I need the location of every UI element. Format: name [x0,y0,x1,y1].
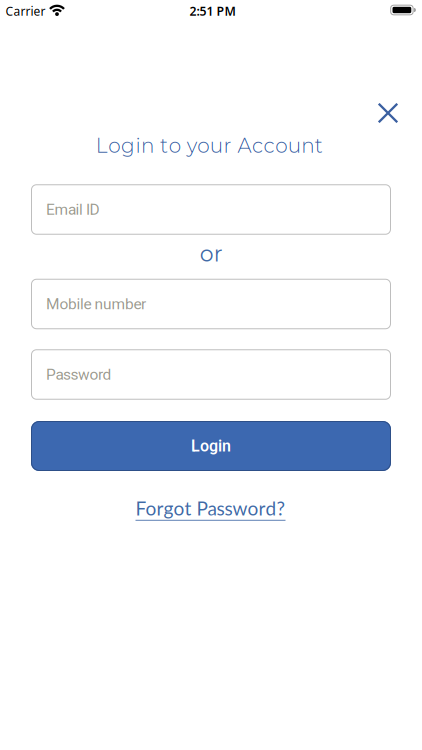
staticText: 2:51 PM [189,3,235,19]
staticText: or [200,240,223,267]
textField[interactable]: Email ID [46,200,391,218]
button[interactable]: Forgot Password? [135,497,285,519]
staticText: Login [191,437,231,455]
button[interactable]: Login [31,421,391,471]
staticText: Carrier [5,3,45,19]
secureTextField[interactable]: Password [46,365,391,383]
staticText: Email ID [46,200,99,218]
textField[interactable]: Mobile number [46,295,391,313]
staticText: Password [46,365,111,383]
staticText: Forgot Password? [135,497,285,519]
staticText: Login to your Account [90,133,328,158]
button[interactable]: Close [373,98,403,128]
staticText: Mobile number [46,295,146,313]
